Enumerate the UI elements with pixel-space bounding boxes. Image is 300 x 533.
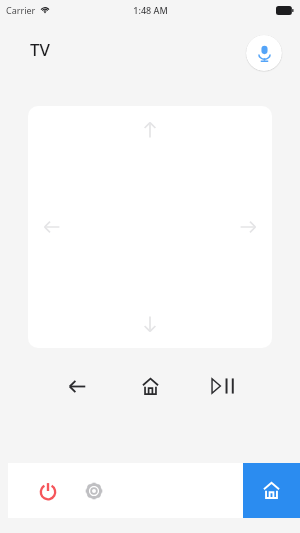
staticText: Carrier xyxy=(6,4,36,16)
button[interactable]: Play or pause xyxy=(187,366,260,406)
staticText: TV xyxy=(30,38,51,61)
staticText: 1:48 AM xyxy=(133,4,168,16)
button[interactable]: Home xyxy=(243,463,300,518)
button[interactable]: Settings xyxy=(76,473,112,509)
button[interactable]: Power xyxy=(30,473,66,509)
button[interactable]: Back xyxy=(40,366,114,406)
button[interactable]: Voice search xyxy=(246,35,282,71)
button[interactable]: Home xyxy=(114,366,187,406)
